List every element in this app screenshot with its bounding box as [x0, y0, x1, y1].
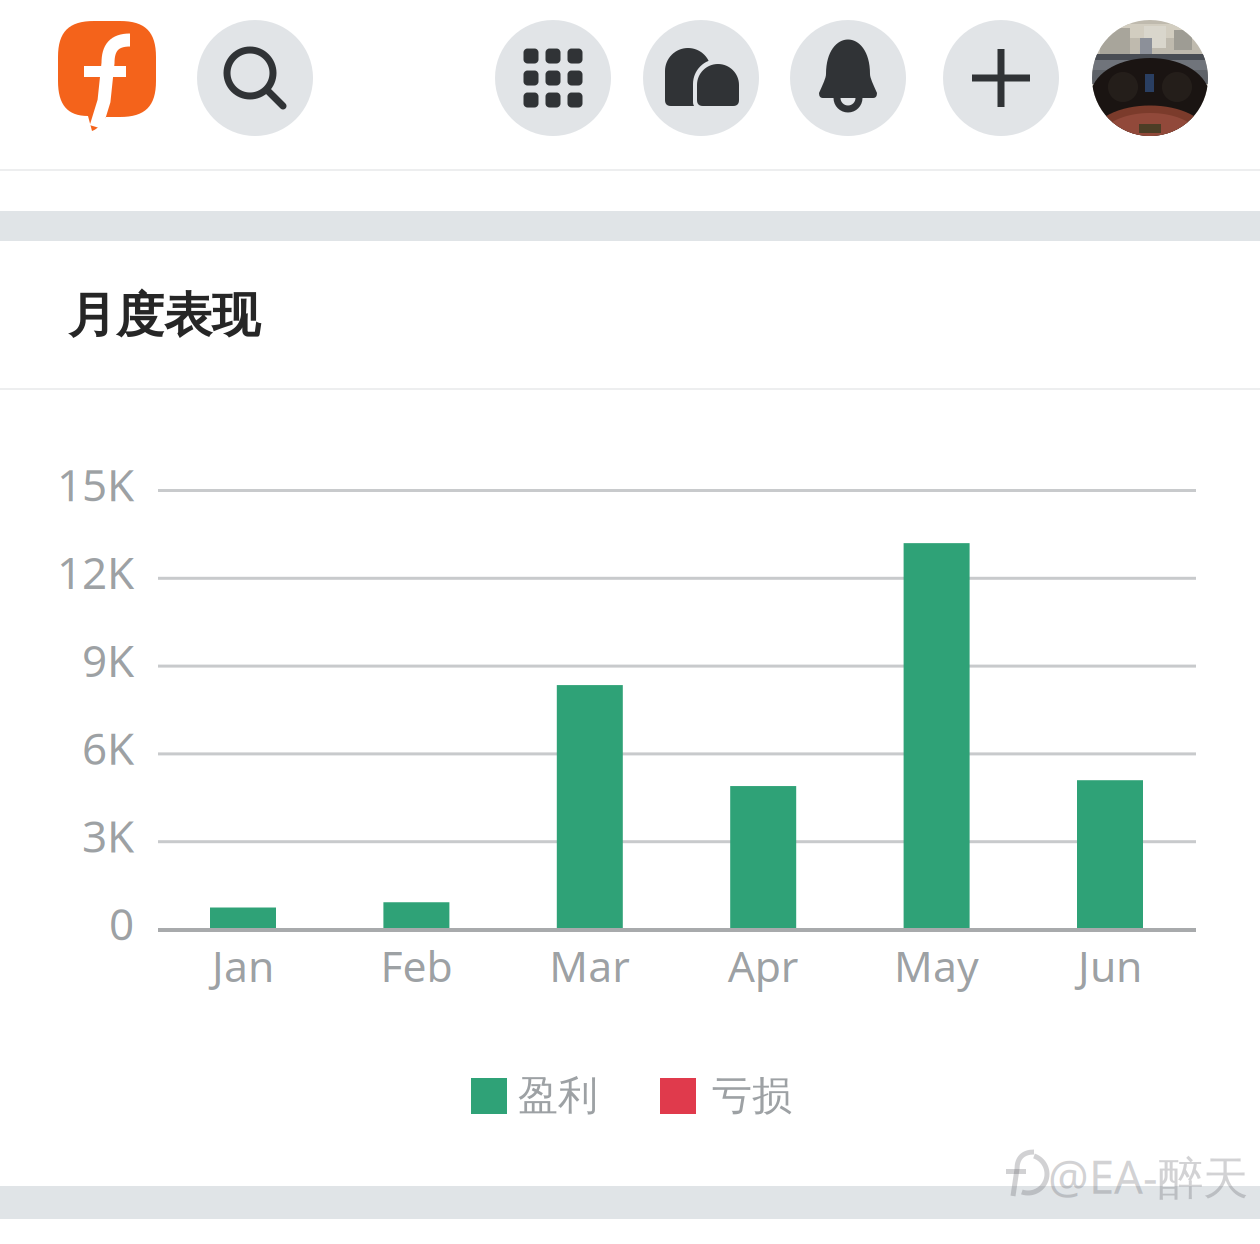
- button[interactable]: Notifications: [790, 20, 906, 136]
- staticText: 盈利: [518, 1071, 598, 1120]
- button[interactable]: Messages: [643, 20, 759, 136]
- staticText: Jan: [212, 937, 274, 994]
- staticText: Jun: [1078, 937, 1142, 994]
- button[interactable]: Menu: [495, 20, 611, 136]
- staticText: Mar: [549, 937, 630, 994]
- staticText: May: [894, 937, 979, 994]
- staticText: 0: [109, 894, 134, 952]
- staticText: 月度表现: [68, 286, 260, 345]
- staticText: 3K: [82, 806, 134, 865]
- staticText: 15K: [57, 455, 134, 513]
- button[interactable]: Search: [197, 20, 313, 136]
- button[interactable]: Profile: [1092, 20, 1208, 136]
- staticText: 6K: [82, 718, 134, 777]
- button[interactable]: Create: [943, 20, 1059, 136]
- staticText: 9K: [82, 631, 134, 689]
- staticText: 亏损: [712, 1071, 792, 1120]
- staticText: Apr: [728, 937, 799, 994]
- staticText: @EA-醉天: [1048, 1146, 1248, 1206]
- staticText: 12K: [57, 543, 134, 601]
- button[interactable]: Home: [58, 22, 156, 132]
- staticText: Feb: [380, 937, 452, 994]
